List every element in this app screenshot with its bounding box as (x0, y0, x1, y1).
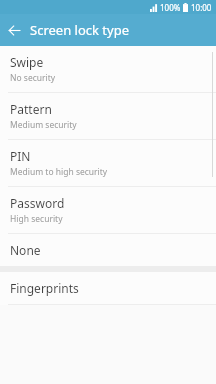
staticText: Fingerprints (10, 280, 79, 296)
button[interactable]: Pattern (0, 93, 216, 139)
button[interactable]: Swipe (0, 46, 216, 92)
staticText: 100% (160, 2, 181, 13)
button[interactable]: Navigate up (0, 16, 28, 44)
staticText: Medium security (10, 119, 77, 131)
button[interactable]: None (0, 234, 216, 266)
staticText: High security (10, 213, 63, 225)
staticText: Pattern (10, 101, 52, 117)
button[interactable]: PIN (0, 140, 216, 186)
staticText: Password (10, 195, 65, 211)
staticText: Swipe (10, 54, 44, 70)
staticText: No security (10, 72, 56, 84)
staticText: PIN (10, 148, 31, 164)
button[interactable]: Fingerprints (0, 272, 216, 304)
staticText: None (10, 242, 41, 258)
staticText: Screen lock type (30, 21, 129, 39)
staticText: Medium to high security (10, 166, 108, 178)
staticText: 10:00 (191, 2, 212, 13)
button[interactable]: Password (0, 187, 216, 233)
